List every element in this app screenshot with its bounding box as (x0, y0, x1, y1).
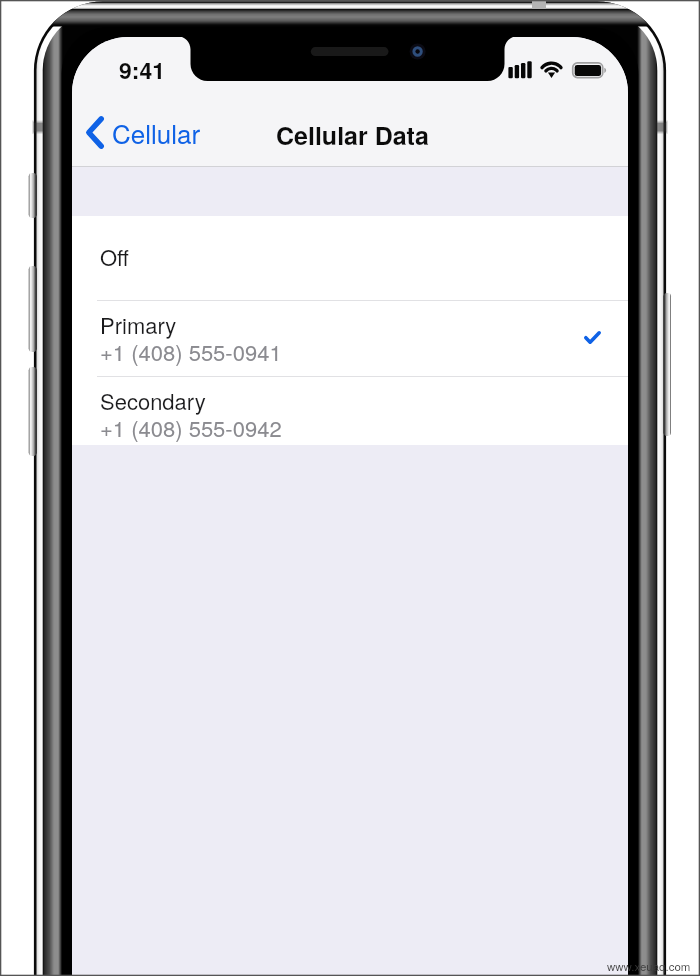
button[interactable]: Secondary (72, 376, 628, 445)
staticText: www.xeuaq.com (607, 958, 691, 974)
button[interactable]: Primary (72, 300, 628, 376)
staticText: Cellular Data (276, 117, 429, 153)
staticText: +1 (408) 555-0942 (100, 412, 282, 444)
staticText: 9:41 (119, 53, 166, 86)
staticText: Cellular (112, 114, 201, 151)
staticText: Secondary (100, 385, 206, 417)
other: Back (86, 116, 104, 149)
button[interactable]: Off (72, 216, 628, 299)
other: Selected (584, 331, 601, 344)
staticText: Off (100, 241, 129, 273)
staticText: +1 (408) 555-0941 (100, 336, 282, 368)
staticText: Primary (100, 309, 177, 341)
button[interactable]: Back (73, 109, 215, 156)
